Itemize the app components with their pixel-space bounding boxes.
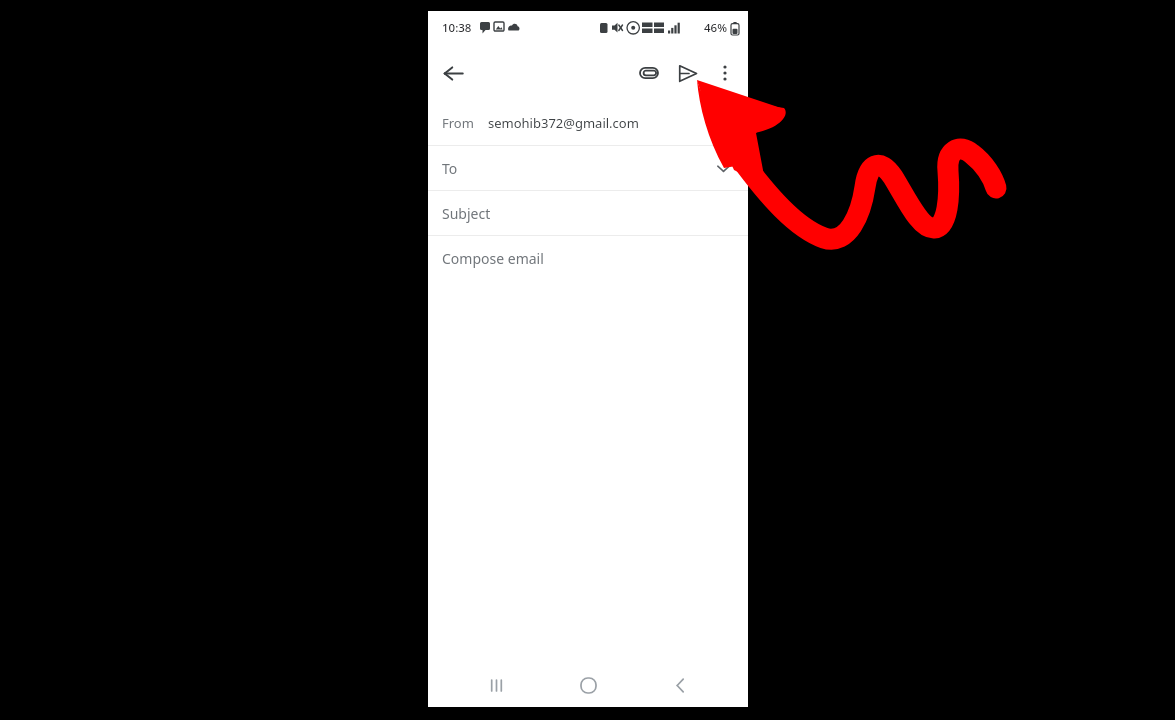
staticText: From (442, 114, 474, 132)
staticText: 10:38 (442, 20, 472, 36)
button[interactable]: Send (668, 54, 706, 92)
button[interactable]: Back (434, 54, 472, 92)
button[interactable]: Attach file (630, 54, 668, 92)
button[interactable]: Back (656, 663, 704, 707)
staticText: To (442, 159, 458, 178)
button[interactable]: Recent apps (472, 663, 520, 707)
button[interactable]: More options (706, 54, 744, 92)
staticText: Subject (442, 204, 491, 223)
button[interactable]: Subject (428, 191, 748, 235)
button[interactable]: Compose email (428, 236, 748, 280)
button[interactable]: From (428, 100, 748, 145)
button[interactable]: Home (564, 663, 612, 707)
button[interactable]: To (428, 146, 748, 190)
staticText: 46% (704, 20, 727, 36)
button[interactable]: Expand recipients (710, 155, 736, 181)
staticText: Compose email (442, 249, 544, 268)
staticText: semohib372@gmail.com (488, 114, 639, 132)
